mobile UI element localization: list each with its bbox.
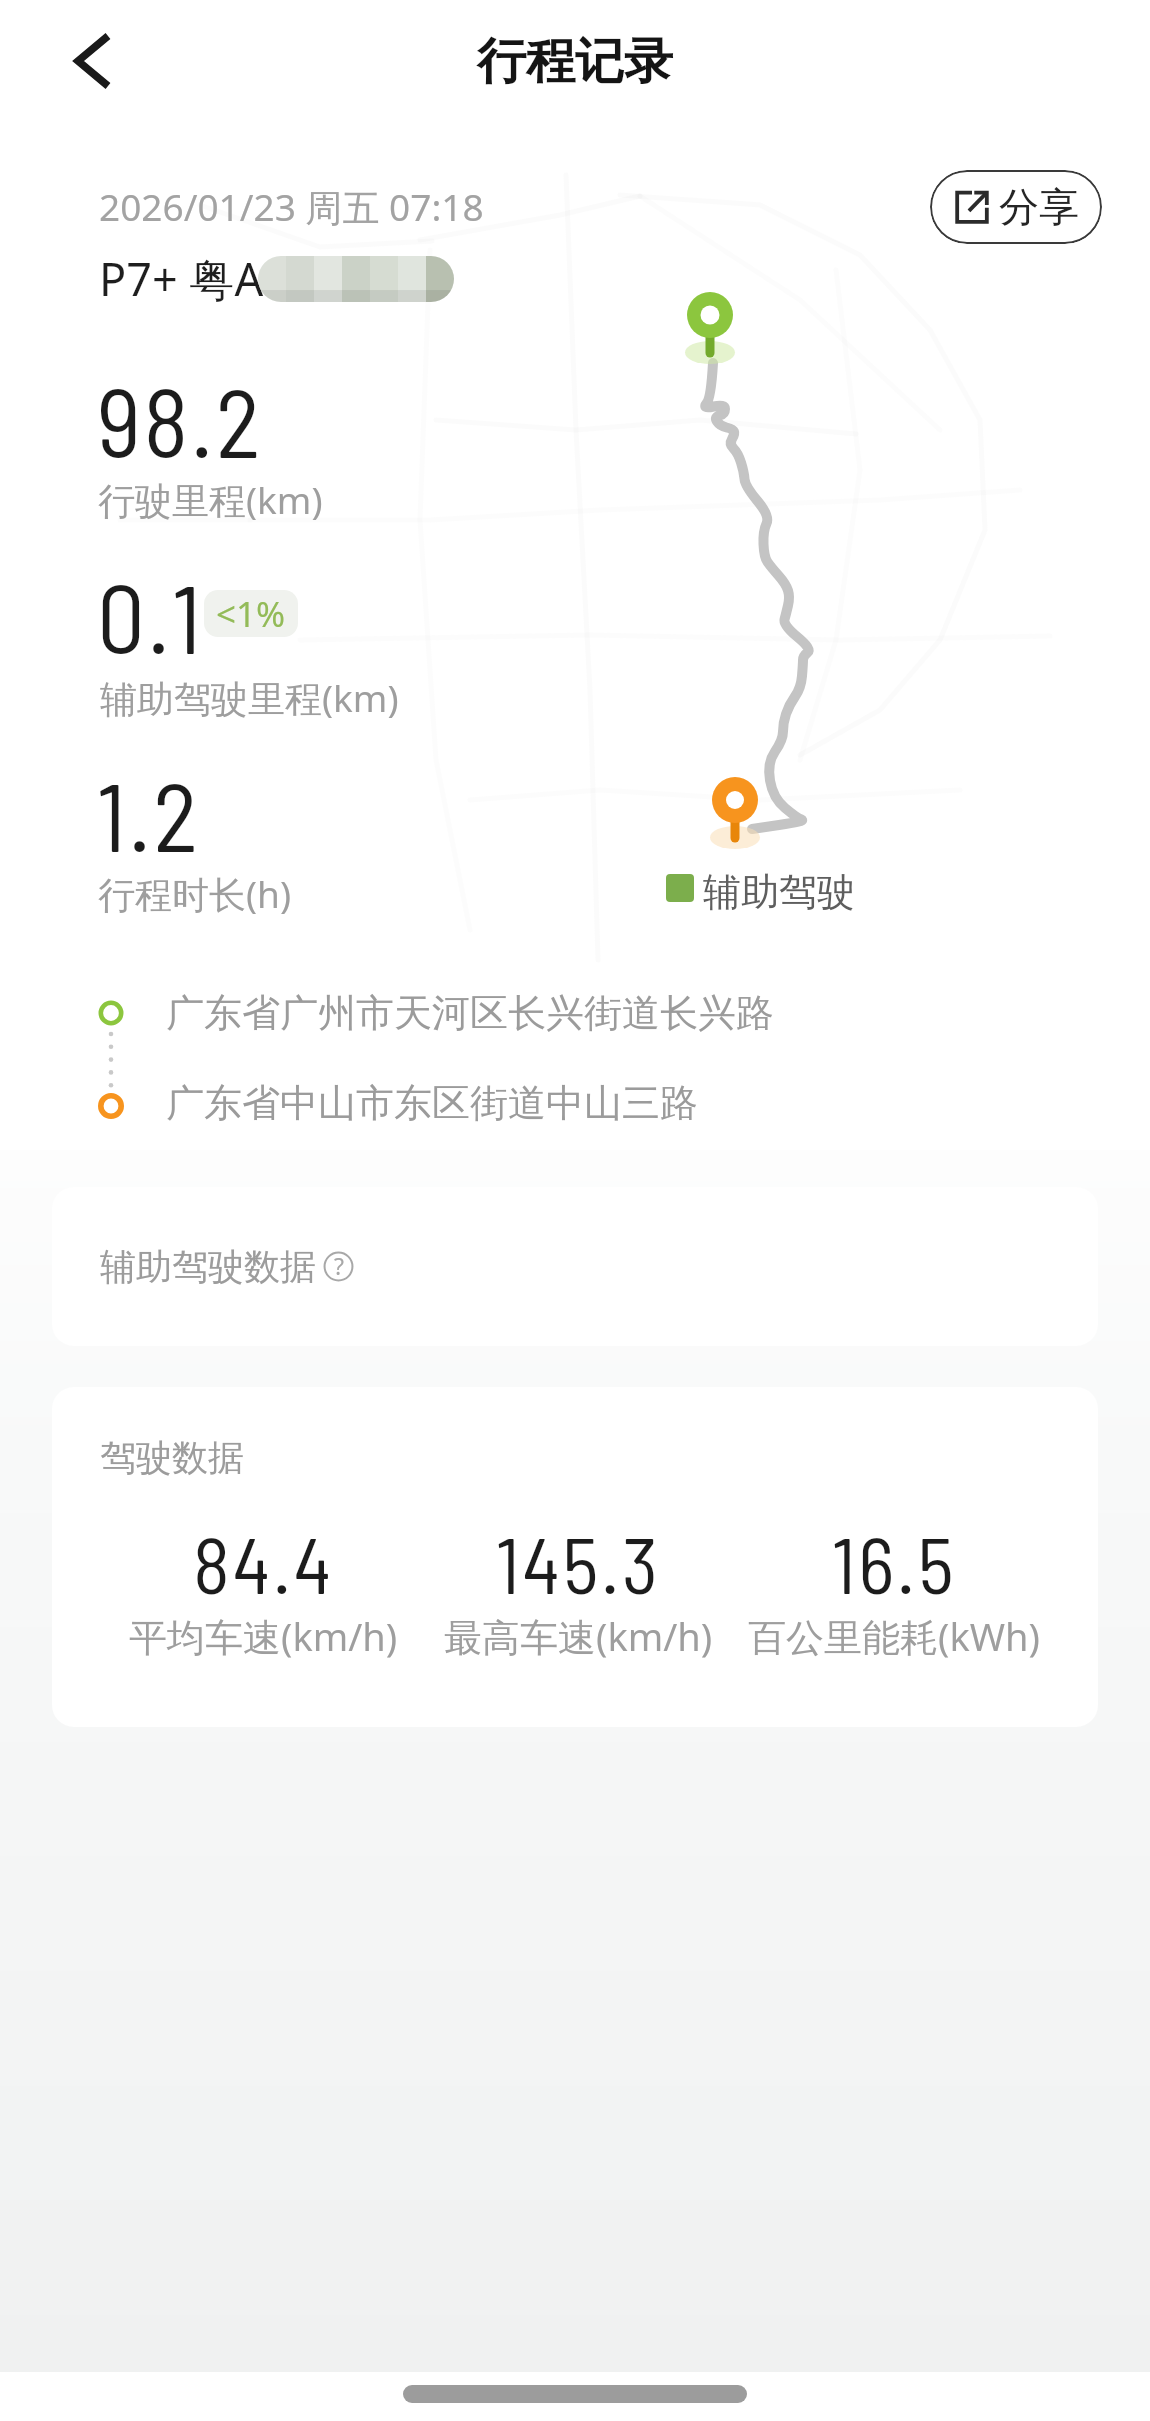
staticText: 辅助驾驶里程(km) bbox=[100, 672, 399, 723]
staticText: 145.3 bbox=[496, 1516, 661, 1610]
staticText: 16.5 bbox=[832, 1516, 957, 1610]
staticText: 行程记录 bbox=[477, 31, 673, 93]
staticText: ? bbox=[334, 1250, 344, 1281]
staticText: 行驶里程(km) bbox=[98, 474, 323, 525]
staticText: 2026/01/23 周五 07:18 bbox=[99, 181, 484, 232]
button[interactable]: Back bbox=[46, 26, 118, 98]
button[interactable]: 分享 bbox=[930, 170, 1102, 244]
button[interactable]: Help about assisted driving data bbox=[323, 1251, 354, 1282]
staticText: 98.2 bbox=[97, 363, 263, 477]
staticText: <1% bbox=[216, 590, 286, 637]
staticText: 辅助驾驶数据 bbox=[100, 1244, 316, 1289]
staticText: 百公里能耗(kWh) bbox=[748, 1610, 1040, 1662]
button[interactable]: 辅助驾驶数据 bbox=[52, 1187, 1098, 1346]
staticText: 平均车速(km/h) bbox=[129, 1610, 398, 1662]
staticText: 行程时长(h) bbox=[98, 868, 292, 919]
staticText: 驾驶数据 bbox=[100, 1435, 244, 1480]
staticText: 广东省广州市天河区长兴街道长兴路 bbox=[166, 989, 774, 1037]
staticText: 84.4 bbox=[193, 1516, 334, 1610]
staticText: 辅助驾驶 bbox=[703, 868, 855, 916]
staticText: 最高车速(km/h) bbox=[444, 1610, 713, 1662]
staticText: P7+ 粤A bbox=[99, 248, 264, 309]
staticText: 分享 bbox=[999, 182, 1079, 232]
staticText: 0.1 bbox=[97, 559, 204, 673]
staticText: 1.2 bbox=[97, 757, 201, 871]
staticText: 广东省中山市东区街道中山三路 bbox=[166, 1079, 698, 1127]
